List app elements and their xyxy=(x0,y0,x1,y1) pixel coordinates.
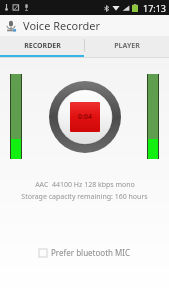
staticText: AAC 44100 Hz 128 kbps mono xyxy=(35,180,135,190)
staticText: 17:13 xyxy=(143,2,167,14)
button[interactable]: RECORDER xyxy=(0,36,84,55)
button[interactable]: Prefer bluetooth MIC xyxy=(39,247,131,258)
staticText: Storage capacity remaining: 160 hours xyxy=(21,192,148,202)
button[interactable]: Voice Recorder xyxy=(0,15,169,36)
button[interactable]: Stop recording xyxy=(49,81,121,153)
button[interactable]: PLAYER xyxy=(85,36,169,55)
staticText: RECORDER xyxy=(24,41,61,51)
staticText: Voice Recorder xyxy=(23,18,101,33)
staticText: PLAYER xyxy=(114,41,140,51)
staticText: Prefer bluetooth MIC xyxy=(51,247,131,258)
staticText: 0:04 xyxy=(78,112,92,122)
